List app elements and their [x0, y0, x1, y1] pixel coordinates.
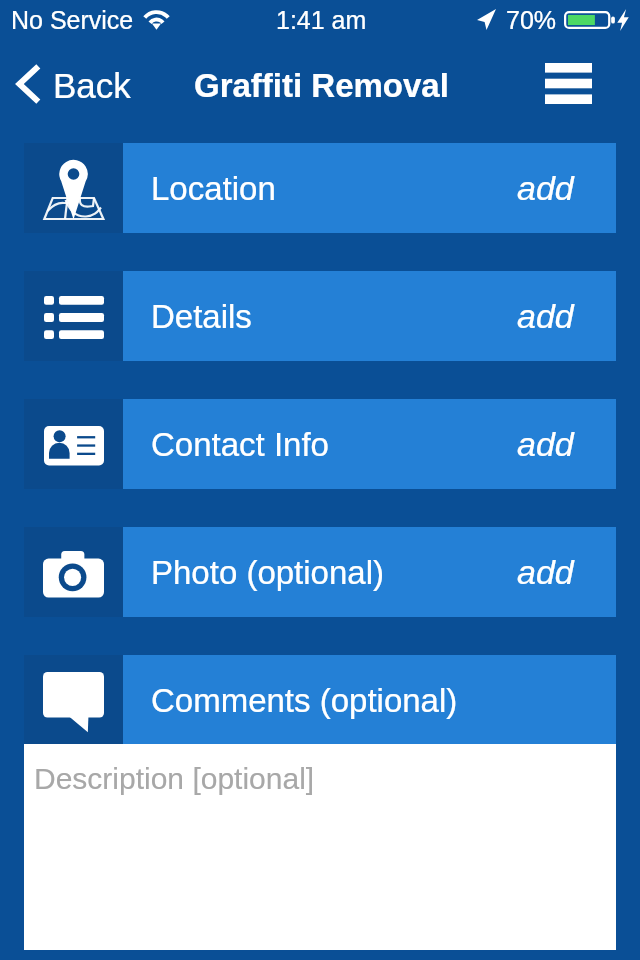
button[interactable]: Location [24, 143, 616, 233]
staticText: Description [optional] [34, 762, 315, 796]
staticText: Graffiti Removal [194, 67, 449, 104]
button[interactable]: Contact Info [24, 399, 616, 489]
staticText: Location [151, 170, 276, 207]
staticText: Photo (optional) [151, 554, 384, 591]
button[interactable]: Description [optional] [24, 744, 616, 950]
staticText: Comments (optional) [151, 682, 458, 719]
button[interactable]: Comments (optional) [24, 655, 616, 745]
button[interactable]: Photo (optional) [24, 527, 616, 617]
button[interactable]: Back [0, 40, 150, 128]
staticText: add [517, 297, 574, 335]
button[interactable]: Details [24, 271, 616, 361]
staticText: Details [151, 298, 252, 335]
staticText: 70% [506, 6, 557, 34]
staticText: add [517, 553, 574, 591]
staticText: Back [53, 66, 131, 105]
staticText: add [517, 169, 574, 207]
button[interactable]: Menu [520, 40, 640, 128]
staticText: No Service [11, 6, 134, 34]
staticText: add [517, 425, 574, 463]
staticText: 1:41 am [276, 6, 367, 34]
staticText: Contact Info [151, 426, 329, 463]
